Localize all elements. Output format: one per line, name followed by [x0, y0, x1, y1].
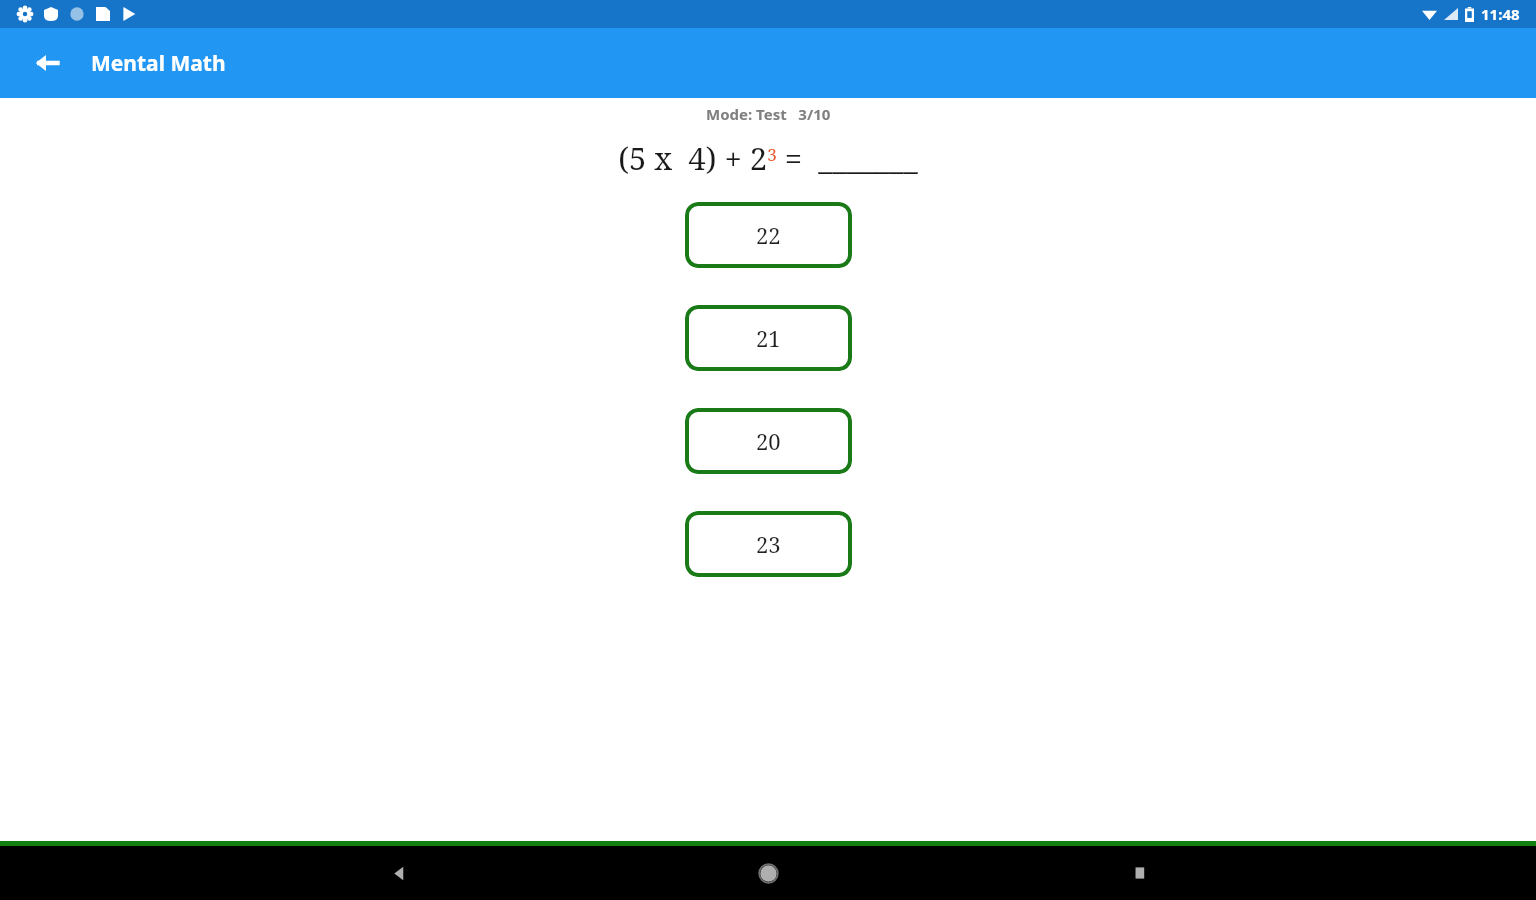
- staticText: Mental Math: [91, 49, 226, 78]
- button[interactable]: 20: [685, 408, 852, 474]
- staticText: Mode: Test 3/10: [706, 104, 831, 124]
- staticText: 11:48: [1481, 4, 1520, 24]
- staticText: 22: [756, 220, 781, 250]
- button[interactable]: Home: [746, 851, 790, 895]
- staticText: 23: [756, 529, 781, 559]
- button[interactable]: Back: [26, 41, 70, 85]
- button[interactable]: 22: [685, 202, 852, 268]
- button[interactable]: Recents: [1118, 851, 1162, 895]
- button[interactable]: 23: [685, 511, 852, 577]
- staticText: 20: [756, 426, 781, 456]
- button[interactable]: 21: [685, 305, 852, 371]
- staticText: 21: [756, 323, 781, 353]
- button[interactable]: Back: [376, 851, 420, 895]
- staticText: (5 x 4) + 23 = _______: [618, 137, 918, 179]
